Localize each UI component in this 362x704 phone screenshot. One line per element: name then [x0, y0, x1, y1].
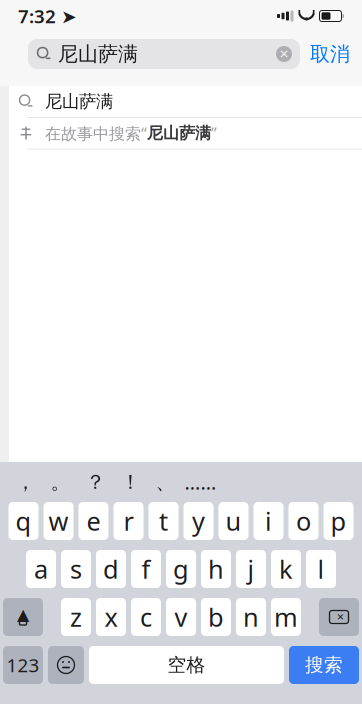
button[interactable]: 空格: [89, 646, 284, 684]
staticText: 。: [50, 470, 70, 494]
button[interactable]: p: [323, 502, 353, 540]
button[interactable]: 搜索: [289, 646, 359, 684]
staticText: u: [225, 504, 241, 538]
staticText: v: [174, 600, 187, 634]
staticText: q: [15, 504, 31, 538]
staticText: 在故事中搜索“: [45, 123, 147, 144]
button[interactable]: j: [236, 550, 266, 588]
staticText: 尼山萨满: [58, 42, 138, 66]
button[interactable]: w: [43, 502, 73, 540]
staticText: y: [192, 504, 205, 538]
button[interactable]: h: [201, 550, 231, 588]
staticText: j: [247, 552, 254, 586]
staticText: h: [208, 552, 224, 586]
button[interactable]: n: [236, 598, 266, 636]
button[interactable]: z: [61, 598, 91, 636]
staticText: r: [123, 504, 133, 538]
staticText: x: [104, 600, 117, 634]
staticText: 搜索: [305, 653, 343, 676]
button[interactable]: l: [306, 550, 336, 588]
button[interactable]: ……: [183, 465, 218, 499]
button[interactable]: ？: [78, 465, 113, 499]
button[interactable]: Shift: [3, 598, 43, 636]
staticText: ✕: [279, 47, 289, 61]
button[interactable]: m: [271, 598, 301, 636]
button[interactable]: ！: [113, 465, 148, 499]
staticText: s: [70, 552, 82, 586]
staticText: ……: [184, 469, 216, 495]
staticText: ？: [85, 470, 105, 494]
button[interactable]: o: [288, 502, 318, 540]
staticText: 取消: [310, 42, 350, 66]
staticText: b: [208, 600, 224, 634]
staticText: 尼山萨满: [147, 123, 211, 143]
button[interactable]: 在故事中搜索“: [9, 118, 362, 149]
staticText: d: [103, 552, 119, 586]
button[interactable]: g: [166, 550, 196, 588]
staticText: ！: [120, 470, 140, 494]
button[interactable]: Delete: [319, 598, 359, 636]
staticText: 7:32 ➤: [18, 4, 77, 28]
staticText: a: [34, 552, 48, 586]
staticText: i: [265, 504, 272, 538]
button[interactable]: f: [131, 550, 161, 588]
staticText: t: [159, 504, 168, 538]
staticText: o: [296, 504, 311, 538]
button[interactable]: e: [78, 502, 108, 540]
button[interactable]: 清除: [271, 41, 297, 67]
staticText: f: [141, 552, 150, 586]
staticText: 123: [6, 653, 39, 677]
button[interactable]: 。: [43, 465, 78, 499]
staticText: ▲: [17, 605, 29, 624]
button[interactable]: i: [253, 502, 283, 540]
button[interactable]: a: [26, 550, 56, 588]
staticText: l: [317, 552, 324, 586]
staticText: k: [279, 552, 293, 586]
staticText: c: [140, 600, 152, 634]
staticText: w: [48, 504, 68, 538]
button[interactable]: 取消: [310, 39, 350, 69]
button[interactable]: u: [218, 502, 248, 540]
button[interactable]: Emoji: [48, 646, 84, 684]
button[interactable]: d: [96, 550, 126, 588]
staticText: g: [173, 552, 189, 586]
button[interactable]: b: [201, 598, 231, 636]
button[interactable]: 、: [148, 465, 183, 499]
staticText: m: [274, 600, 298, 634]
button[interactable]: c: [131, 598, 161, 636]
staticText: 、: [155, 470, 175, 494]
button[interactable]: v: [166, 598, 196, 636]
staticText: ”: [211, 123, 217, 144]
button[interactable]: x: [96, 598, 126, 636]
button[interactable]: k: [271, 550, 301, 588]
staticText: 尼山萨满: [45, 91, 113, 112]
staticText: 空格: [167, 653, 205, 676]
button[interactable]: ，: [8, 465, 43, 499]
button[interactable]: 123: [3, 646, 43, 684]
staticText: n: [243, 600, 259, 634]
staticText: e: [86, 504, 100, 538]
staticText: z: [70, 600, 82, 634]
button[interactable]: r: [113, 502, 143, 540]
button[interactable]: q: [8, 502, 38, 540]
staticText: p: [330, 504, 346, 538]
button[interactable]: t: [148, 502, 178, 540]
button[interactable]: 尼山萨满: [9, 86, 362, 117]
button[interactable]: s: [61, 550, 91, 588]
staticText: ✕: [336, 612, 344, 622]
button[interactable]: y: [183, 502, 213, 540]
staticText: ，: [15, 470, 35, 494]
